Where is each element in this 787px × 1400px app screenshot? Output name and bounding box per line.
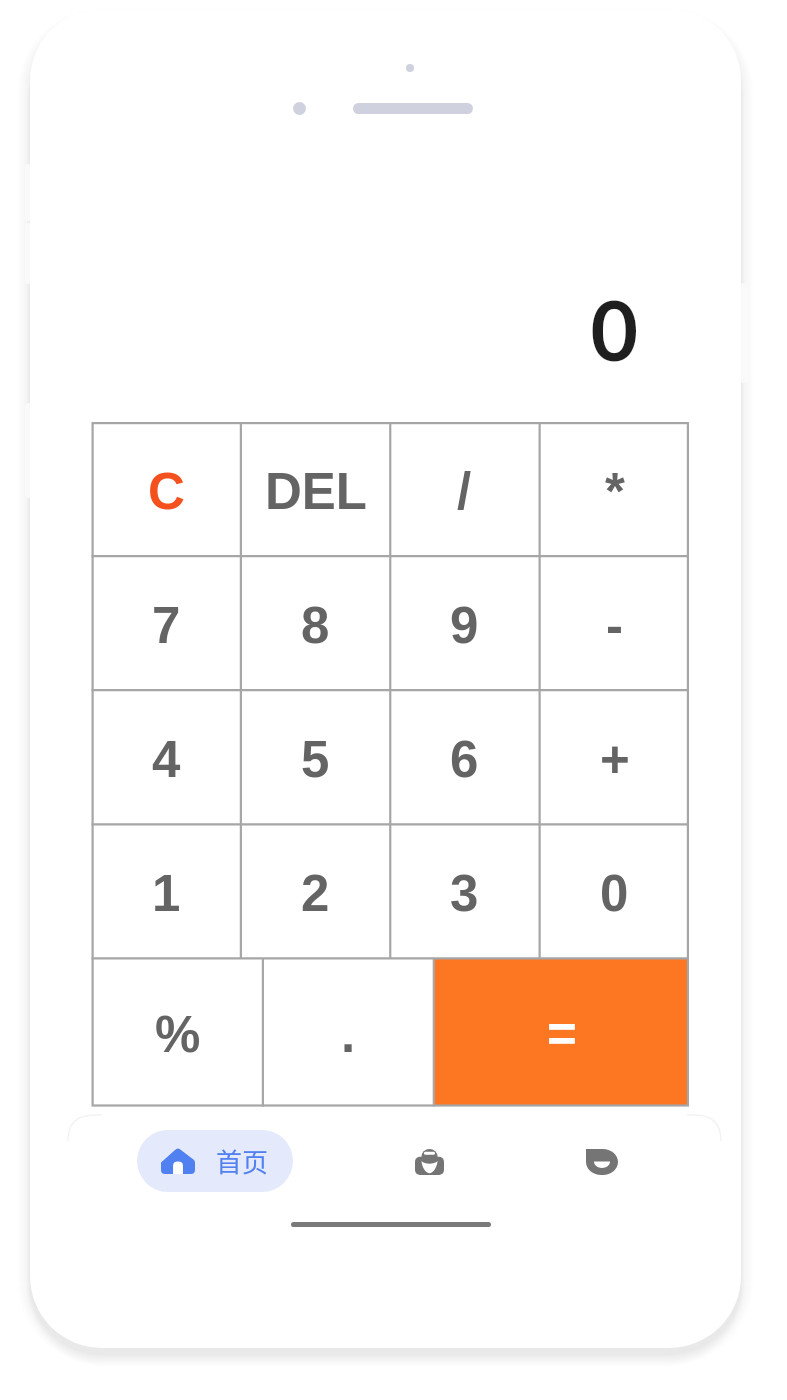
staticText: DEL bbox=[265, 463, 367, 520]
staticText: 0 bbox=[0, 280, 638, 378]
button[interactable]: / bbox=[390, 422, 539, 556]
button[interactable]: % bbox=[92, 958, 263, 1106]
button[interactable]: DEL bbox=[241, 422, 390, 556]
button[interactable]: . bbox=[263, 958, 434, 1106]
button[interactable]: 7 bbox=[92, 556, 241, 690]
button[interactable]: 1 bbox=[92, 824, 241, 958]
staticText: 9 bbox=[450, 597, 479, 654]
staticText: C bbox=[148, 463, 185, 520]
staticText: 0 bbox=[600, 865, 629, 922]
staticText: 5 bbox=[301, 731, 330, 788]
button[interactable]: Profile bbox=[571, 1131, 633, 1193]
staticText: / bbox=[457, 463, 472, 520]
staticText: 首页 bbox=[216, 1142, 269, 1180]
button[interactable]: 8 bbox=[241, 556, 390, 690]
button[interactable]: * bbox=[540, 422, 689, 556]
staticText: 8 bbox=[301, 597, 330, 654]
staticText: 2 bbox=[301, 865, 330, 922]
button[interactable]: 5 bbox=[241, 690, 390, 824]
button[interactable]: Shop bbox=[398, 1131, 460, 1193]
staticText: 4 bbox=[152, 731, 181, 788]
button[interactable]: C bbox=[92, 422, 241, 556]
button[interactable]: 4 bbox=[92, 690, 241, 824]
button[interactable]: 0 bbox=[540, 824, 689, 958]
button[interactable]: 2 bbox=[241, 824, 390, 958]
staticText: - bbox=[606, 597, 623, 654]
button[interactable]: + bbox=[540, 690, 689, 824]
button[interactable]: 6 bbox=[390, 690, 539, 824]
staticText: = bbox=[547, 1006, 577, 1063]
staticText: 7 bbox=[152, 597, 181, 654]
staticText: * bbox=[605, 463, 625, 520]
button[interactable]: - bbox=[540, 556, 689, 690]
button[interactable]: 首页 bbox=[137, 1130, 293, 1192]
staticText: % bbox=[155, 1006, 201, 1063]
button[interactable]: = bbox=[434, 958, 689, 1106]
staticText: 6 bbox=[450, 731, 479, 788]
button[interactable]: 9 bbox=[390, 556, 539, 690]
staticText: + bbox=[600, 731, 630, 788]
staticText: 1 bbox=[152, 865, 181, 922]
button[interactable]: 3 bbox=[390, 824, 539, 958]
staticText: . bbox=[341, 1006, 356, 1063]
staticText: 3 bbox=[450, 865, 479, 922]
